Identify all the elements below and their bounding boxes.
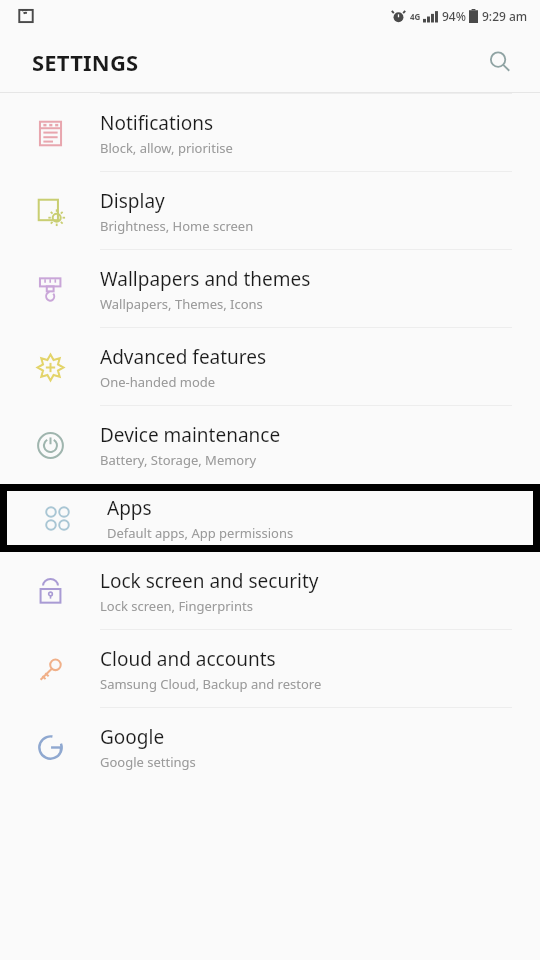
button[interactable]: Google <box>0 708 540 786</box>
staticText: Brightness, Home screen <box>100 217 254 235</box>
staticText: Block, allow, prioritise <box>100 139 233 157</box>
button[interactable]: Device maintenance <box>0 406 540 484</box>
staticText: 4G <box>410 11 421 22</box>
staticText: Google settings <box>100 753 196 771</box>
staticText: Default apps, App permissions <box>107 524 294 542</box>
button[interactable]: Advanced features <box>0 328 540 406</box>
staticText: Google <box>100 724 165 750</box>
button[interactable]: Search <box>478 40 522 84</box>
staticText: Samsung Cloud, Backup and restore <box>100 675 322 693</box>
button[interactable]: Display <box>0 172 540 250</box>
staticText: Battery, Storage, Memory <box>100 451 257 469</box>
staticText: One-handed mode <box>100 373 216 391</box>
staticText: Display <box>100 188 165 214</box>
staticText: Wallpapers, Themes, Icons <box>100 295 263 313</box>
button[interactable]: Apps <box>0 484 540 552</box>
staticText: Cloud and accounts <box>100 646 276 672</box>
staticText: 9:29 am <box>482 8 528 24</box>
button[interactable]: Cloud and accounts <box>0 630 540 708</box>
staticText: Wallpapers and themes <box>100 266 311 292</box>
button[interactable]: Lock screen and security <box>0 552 540 630</box>
staticText: Advanced features <box>100 344 267 370</box>
button[interactable]: Notifications <box>0 94 540 172</box>
staticText: Lock screen, Fingerprints <box>100 597 253 615</box>
staticText: Lock screen and security <box>100 568 319 594</box>
staticText: Device maintenance <box>100 422 281 448</box>
staticText: Apps <box>107 495 152 521</box>
button[interactable]: Wallpapers and themes <box>0 250 540 328</box>
staticText: 94% <box>442 8 466 24</box>
staticText: Notifications <box>100 110 214 136</box>
staticText: SETTINGS <box>32 47 139 77</box>
